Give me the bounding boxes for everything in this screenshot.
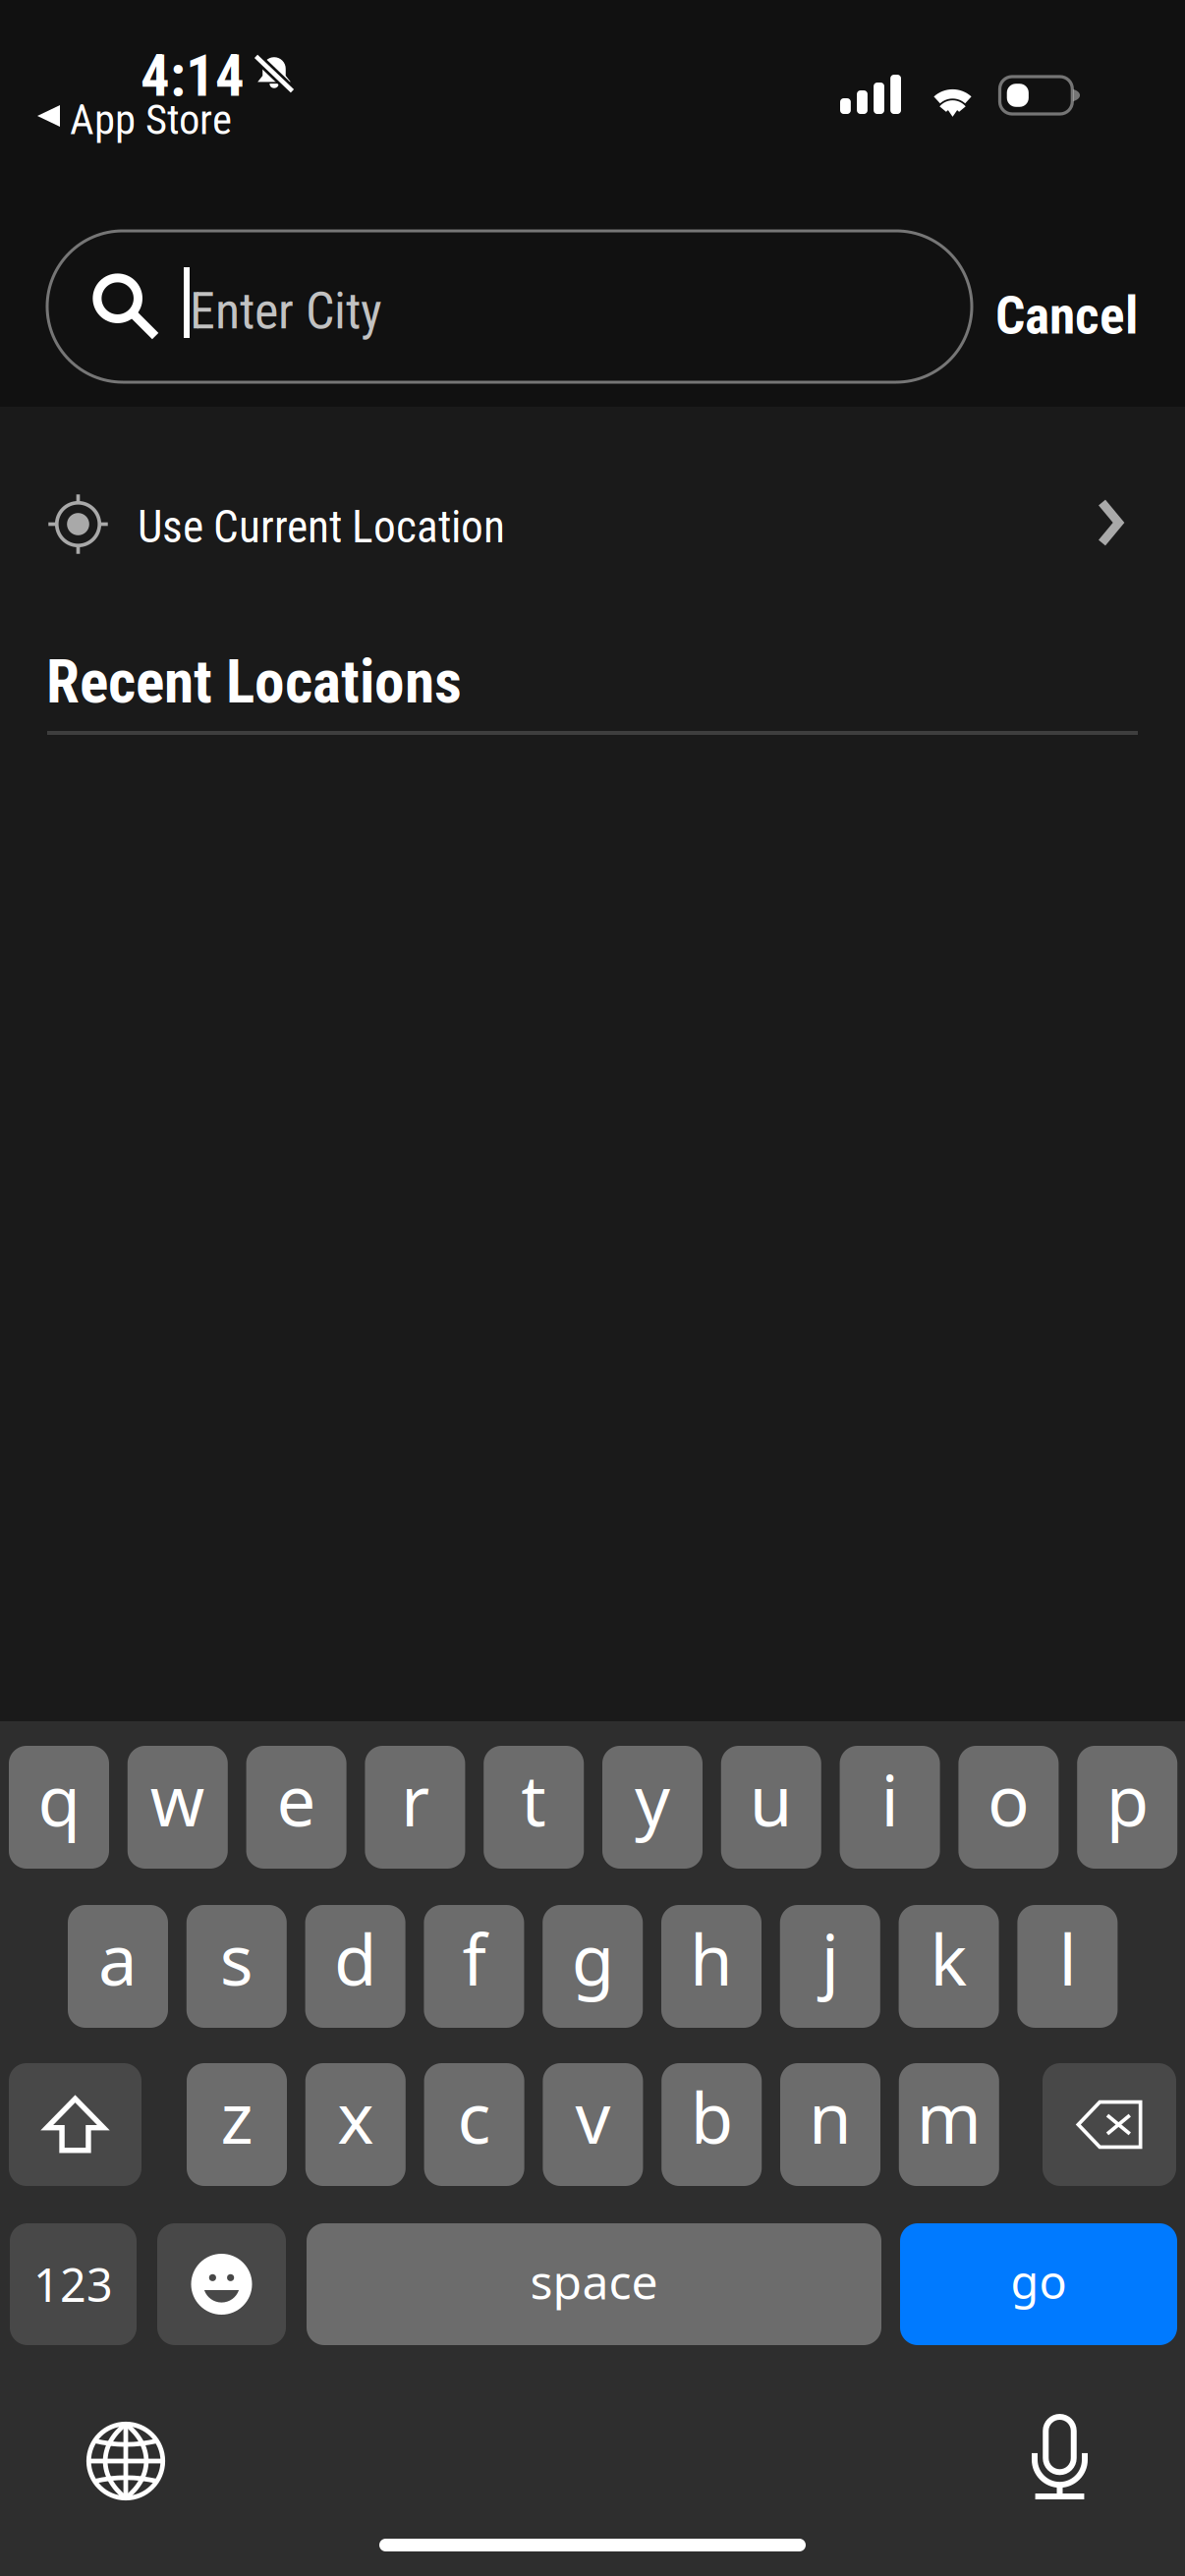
staticText: z [221, 2071, 253, 2163]
button[interactable]: b [661, 2063, 762, 2186]
staticText: o [987, 1753, 1030, 1845]
staticText: q [38, 1753, 80, 1845]
staticText: p [1106, 1753, 1148, 1845]
staticText: 4:14 [141, 42, 245, 110]
button[interactable]: Use Current Location [0, 464, 1185, 586]
button[interactable]: w [128, 1746, 228, 1869]
staticText: Cancel [995, 285, 1138, 346]
button[interactable]: i [840, 1746, 940, 1869]
button[interactable]: e [246, 1746, 346, 1869]
staticText: t [521, 1753, 547, 1845]
staticText: g [572, 1912, 614, 2005]
staticText: go [1011, 2251, 1067, 2312]
staticText: b [690, 2071, 733, 2163]
staticText: y [635, 1753, 670, 1845]
button[interactable]: q [9, 1746, 109, 1869]
staticText: m [917, 2071, 981, 2163]
staticText: h [690, 1912, 733, 2005]
staticText: l [1059, 1912, 1076, 2005]
staticText: space [530, 2250, 658, 2313]
staticText: u [750, 1753, 793, 1845]
button[interactable]: t [484, 1746, 584, 1869]
button[interactable]: Enter City [47, 231, 972, 382]
staticText: Recent Locations [46, 646, 462, 717]
staticText: w [150, 1753, 205, 1845]
staticText: f [462, 1912, 486, 2005]
staticText: n [809, 2071, 852, 2163]
button[interactable]: Shift [9, 2063, 141, 2186]
button[interactable]: h [661, 1905, 762, 2028]
button[interactable]: l [1017, 1905, 1118, 2028]
staticText: Use Current Location [138, 501, 505, 553]
button[interactable]: c [424, 2063, 524, 2186]
button[interactable]: x [305, 2063, 406, 2186]
button[interactable]: k [899, 1905, 999, 2028]
button[interactable]: p [1077, 1746, 1177, 1869]
staticText: e [277, 1753, 316, 1845]
button[interactable]: v [543, 2063, 643, 2186]
button[interactable]: Cancel [976, 259, 1157, 372]
staticText: j [821, 1912, 839, 2005]
staticText: App Store [70, 95, 232, 144]
button[interactable]: u [721, 1746, 821, 1869]
button[interactable]: y [602, 1746, 703, 1869]
staticText: i [881, 1753, 899, 1845]
button[interactable]: 123 [10, 2223, 137, 2345]
staticText: v [575, 2071, 611, 2163]
staticText: r [401, 1753, 429, 1845]
button[interactable]: z [187, 2063, 287, 2186]
button[interactable]: d [305, 1905, 405, 2028]
button[interactable]: m [899, 2063, 999, 2186]
button[interactable]: Delete [1043, 2063, 1176, 2186]
staticText: k [930, 1912, 967, 2005]
button[interactable]: Emoji [157, 2223, 286, 2345]
button[interactable]: Next keyboard [85, 2421, 166, 2501]
staticText: 123 [33, 2254, 113, 2315]
button[interactable]: go [900, 2223, 1177, 2345]
button[interactable]: r [365, 1746, 465, 1869]
button[interactable]: j [780, 1905, 880, 2028]
staticText: s [220, 1912, 253, 2005]
button[interactable]: s [186, 1905, 287, 2028]
staticText: a [98, 1912, 138, 2005]
button[interactable]: space [307, 2223, 881, 2345]
button[interactable]: f [424, 1905, 524, 2028]
staticText: c [457, 2071, 491, 2163]
button[interactable]: g [543, 1905, 643, 2028]
staticText: d [334, 1912, 376, 2005]
button[interactable]: a [68, 1905, 168, 2028]
button[interactable]: o [958, 1746, 1059, 1869]
staticText: Enter City [190, 281, 382, 341]
button[interactable]: Dictation [1032, 2417, 1088, 2499]
staticText: x [337, 2071, 374, 2163]
button[interactable]: n [780, 2063, 880, 2186]
